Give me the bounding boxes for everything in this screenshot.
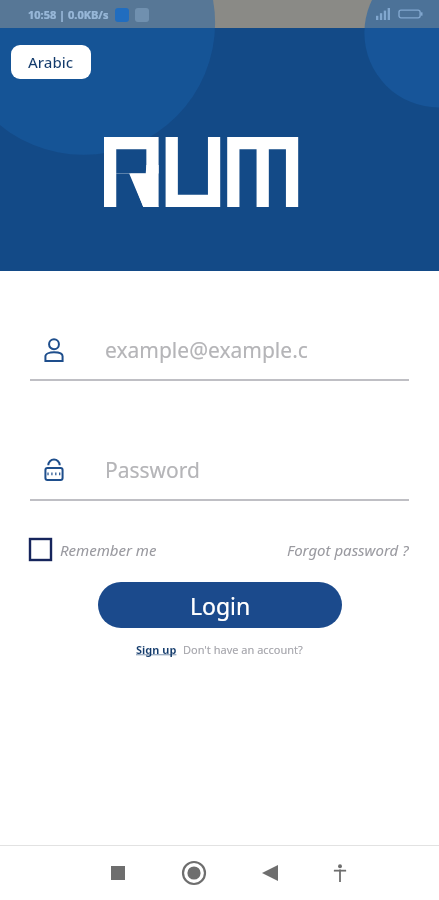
staticText: Login bbox=[190, 590, 251, 621]
button[interactable]: Login bbox=[98, 582, 342, 628]
button[interactable]: Password bbox=[30, 446, 409, 501]
button[interactable]: Arabic bbox=[11, 45, 91, 79]
button[interactable]: Accessibility bbox=[320, 853, 360, 893]
staticText: example@example.c bbox=[105, 336, 308, 365]
staticText: Remember me bbox=[60, 540, 157, 560]
other: Password bbox=[30, 446, 78, 494]
button[interactable]: Email bbox=[30, 326, 409, 381]
button[interactable]: Back bbox=[250, 853, 290, 893]
staticText: Arabic bbox=[28, 52, 74, 72]
staticText: Don't have an account? bbox=[183, 642, 303, 657]
other: Email bbox=[30, 326, 78, 374]
button[interactable]: Home bbox=[174, 853, 214, 893]
button[interactable]: Sign up bbox=[136, 642, 177, 657]
button[interactable]: Forgot password ? bbox=[287, 540, 409, 560]
staticText: Password bbox=[105, 456, 200, 485]
staticText: 10:58 | 0.0KB/s bbox=[28, 7, 109, 22]
staticText: Forgot password ? bbox=[287, 540, 409, 560]
button[interactable]: Recents bbox=[98, 853, 138, 893]
button[interactable]: Remember me bbox=[30, 539, 157, 560]
staticText: Sign up bbox=[136, 642, 177, 657]
